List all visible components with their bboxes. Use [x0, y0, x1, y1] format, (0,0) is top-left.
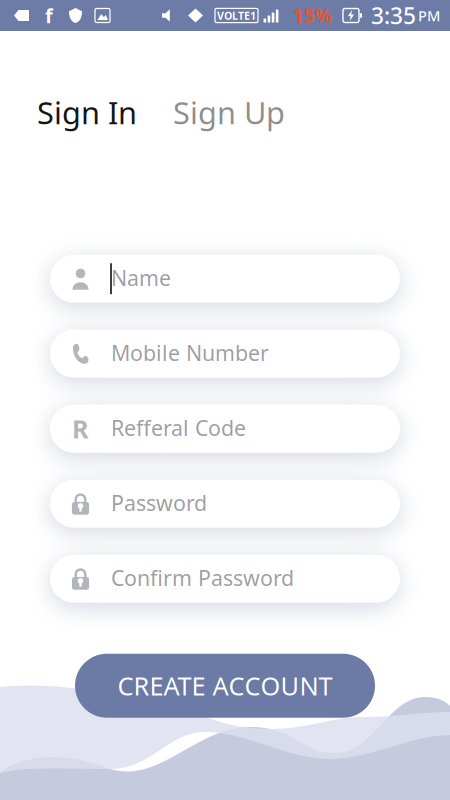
staticText: Mobile Number [111, 339, 269, 367]
button[interactable]: Sign Up [173, 92, 285, 133]
staticText: 15% [293, 3, 332, 28]
button[interactable]: Name [50, 255, 400, 303]
staticText: VOLTE1 [217, 8, 256, 23]
staticText: Refferal Code [111, 414, 246, 442]
button[interactable]: CREATE ACCOUNT [75, 654, 375, 718]
staticText: R [72, 412, 89, 445]
staticText: f [45, 2, 53, 29]
button[interactable]: Password [50, 480, 400, 528]
staticText: PM [418, 6, 440, 25]
button[interactable]: R [50, 405, 400, 453]
staticText: Password [111, 489, 207, 517]
staticText: Sign In [37, 92, 137, 133]
staticText: Sign Up [173, 92, 285, 133]
staticText: 3:35 [371, 0, 416, 30]
staticText: Name [111, 264, 171, 292]
button[interactable]: Sign In [37, 92, 137, 133]
button[interactable]: Mobile Number [50, 330, 400, 378]
staticText: CREATE ACCOUNT [117, 669, 332, 702]
button[interactable]: Confirm Password [50, 555, 400, 603]
staticText: Confirm Password [111, 564, 294, 592]
